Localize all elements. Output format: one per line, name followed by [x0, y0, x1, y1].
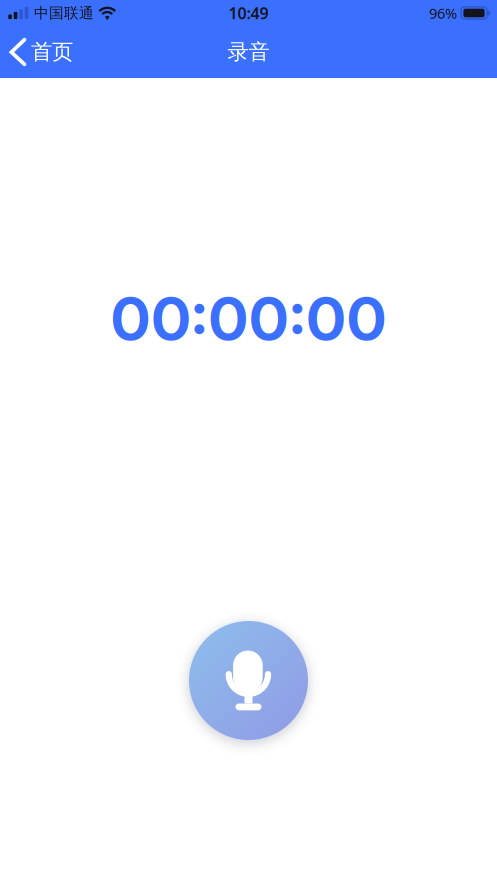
staticText: 96% [429, 3, 457, 23]
staticText: 00:00:00 [111, 283, 386, 355]
staticText: 10:49 [228, 2, 268, 24]
staticText: 录音 [227, 39, 269, 65]
staticText: 中国联通 [34, 4, 94, 22]
staticText: 首页 [31, 39, 73, 65]
button[interactable]: Start recording [189, 621, 308, 740]
button[interactable]: 首页 [0, 30, 85, 74]
